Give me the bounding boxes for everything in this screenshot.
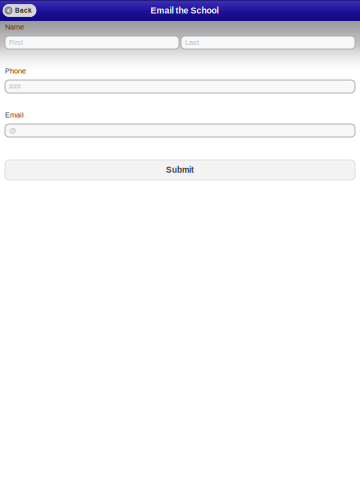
staticText: Email the School (150, 6, 218, 15)
staticText: Last (185, 38, 199, 46)
staticText: ### (9, 82, 21, 90)
button[interactable]: First (5, 36, 179, 49)
staticText: Phone (5, 67, 26, 75)
staticText: Submit (166, 165, 194, 175)
button[interactable]: Submit (5, 160, 355, 180)
staticText: @ (9, 126, 16, 134)
staticText: Name (5, 23, 24, 31)
staticText: Back (15, 7, 32, 14)
button[interactable]: Back (3, 4, 36, 16)
button[interactable]: @ (5, 124, 355, 137)
button[interactable]: Last (181, 36, 355, 49)
staticText: First (9, 38, 23, 46)
staticText: Email (5, 111, 24, 119)
button[interactable]: ### (5, 80, 355, 93)
